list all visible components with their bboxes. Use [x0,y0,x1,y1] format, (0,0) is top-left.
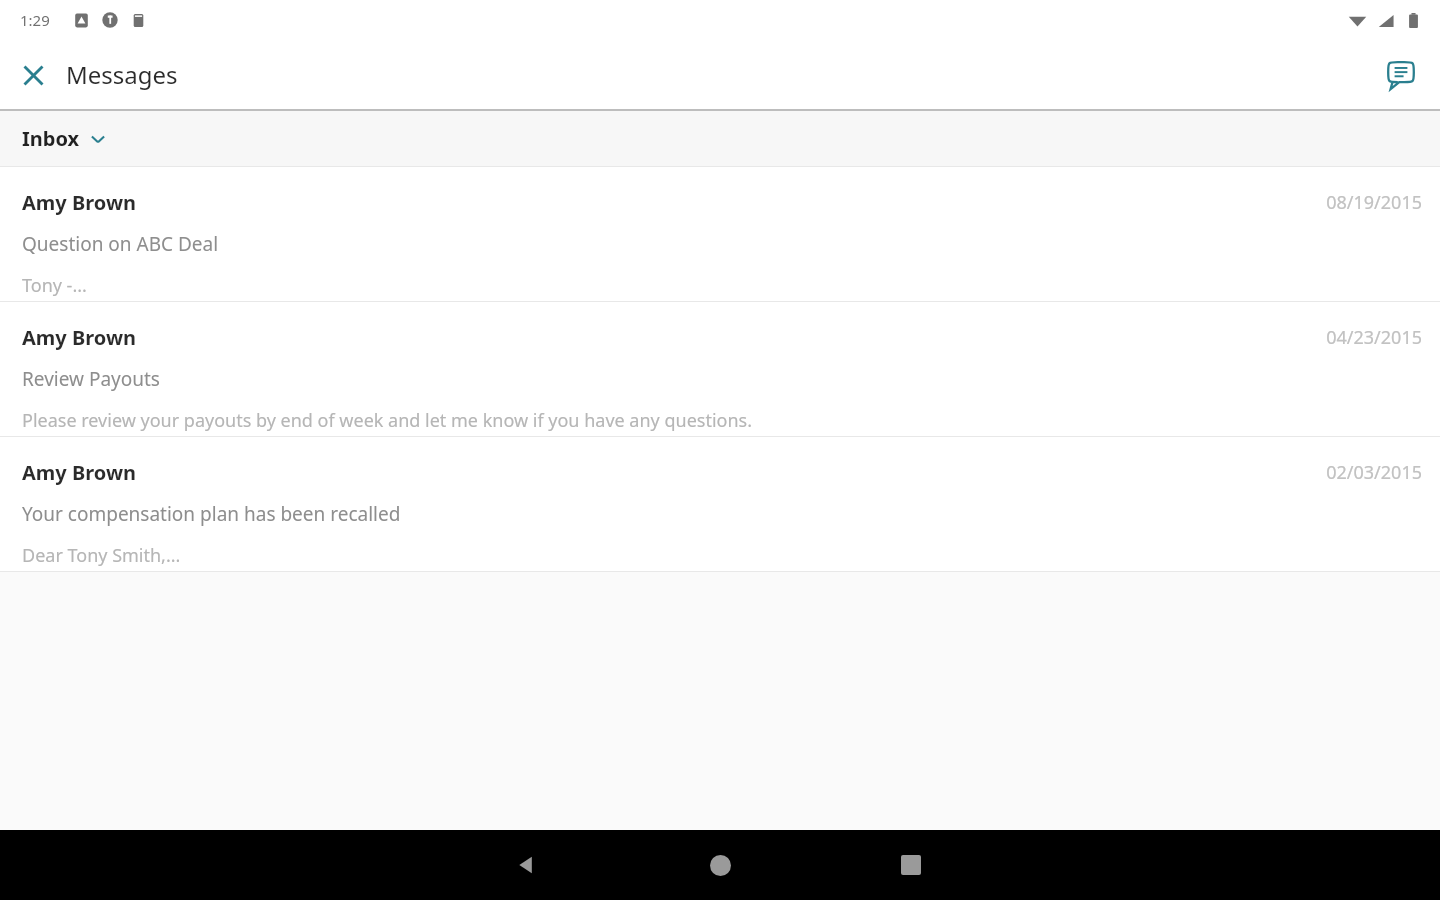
staticText: Messages [66,58,178,91]
staticText: Please review your payouts by end of wee… [22,408,753,433]
button[interactable]: Compose message [1376,50,1426,100]
staticText: Tony -... [22,273,87,298]
button[interactable]: Inbox [0,111,1440,166]
staticText: 02/03/2015 [1326,460,1422,485]
staticText: Question on ABC Deal [22,231,219,257]
staticText: Inbox [22,125,80,152]
button[interactable]: Amy Brown [0,437,1440,571]
button[interactable]: Amy Brown [0,302,1440,436]
staticText: 08/19/2015 [1326,190,1422,215]
button[interactable]: Home [696,841,744,889]
staticText: Amy Brown [22,459,1326,486]
button[interactable]: Amy Brown [0,167,1440,301]
button[interactable]: Close [9,51,57,99]
staticText: 1:29 [20,10,50,30]
staticText: Dear Tony Smith,... [22,543,181,568]
button[interactable]: Back [503,841,551,889]
staticText: Amy Brown [22,324,1326,351]
staticText: Review Payouts [22,366,160,392]
staticText: Amy Brown [22,189,1326,216]
staticText: Your compensation plan has been recalled [22,501,401,527]
staticText: 04/23/2015 [1326,325,1422,350]
button[interactable]: Recent apps [887,841,935,889]
